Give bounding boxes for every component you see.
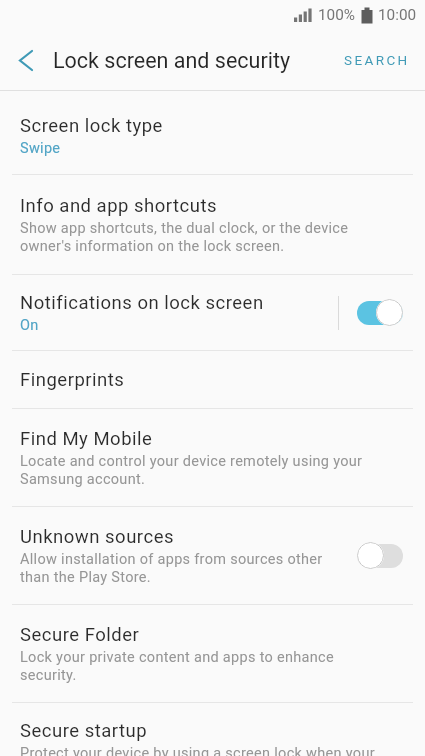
button[interactable]: Secure Folder: [0, 605, 425, 702]
staticText: Lock screen and security: [53, 48, 291, 73]
staticText: Find My Mobile: [20, 428, 153, 450]
staticText: Screen lock type: [20, 115, 163, 137]
staticText: 100%: [318, 6, 355, 24]
staticText: SEARCH: [344, 52, 410, 68]
staticText: Secure startup: [20, 720, 148, 742]
staticText: On: [20, 317, 39, 334]
staticText: Secure Folder: [20, 624, 140, 646]
staticText: 10:00: [378, 6, 417, 24]
staticText: Protect your device by using a screen lo…: [20, 745, 375, 756]
staticText: Swipe: [20, 140, 61, 157]
button[interactable]: Fingerprints: [0, 351, 425, 408]
staticText: Show app shortcuts, the dual clock, or t…: [20, 220, 349, 255]
button[interactable]: SEARCH: [344, 30, 425, 90]
button[interactable]: Find My Mobile: [0, 409, 425, 506]
staticText: Notifications on lock screen: [20, 292, 264, 314]
button[interactable]: Info and app shortcuts: [0, 175, 425, 274]
button[interactable]: Screen lock type: [0, 91, 425, 174]
staticText: Info and app shortcuts: [20, 195, 218, 217]
button[interactable]: Notifications on lock screen: [0, 275, 425, 350]
staticText: Locate and control your device remotely …: [20, 453, 363, 488]
staticText: Unknown sources: [20, 526, 175, 548]
button[interactable]: Secure startup: [0, 703, 425, 756]
button[interactable]: Unknown sources: [0, 507, 425, 604]
button[interactable]: [0, 30, 52, 90]
staticText: Fingerprints: [20, 369, 125, 391]
staticText: Allow installation of apps from sources …: [20, 551, 323, 586]
staticText: Lock your private content and apps to en…: [20, 649, 334, 684]
